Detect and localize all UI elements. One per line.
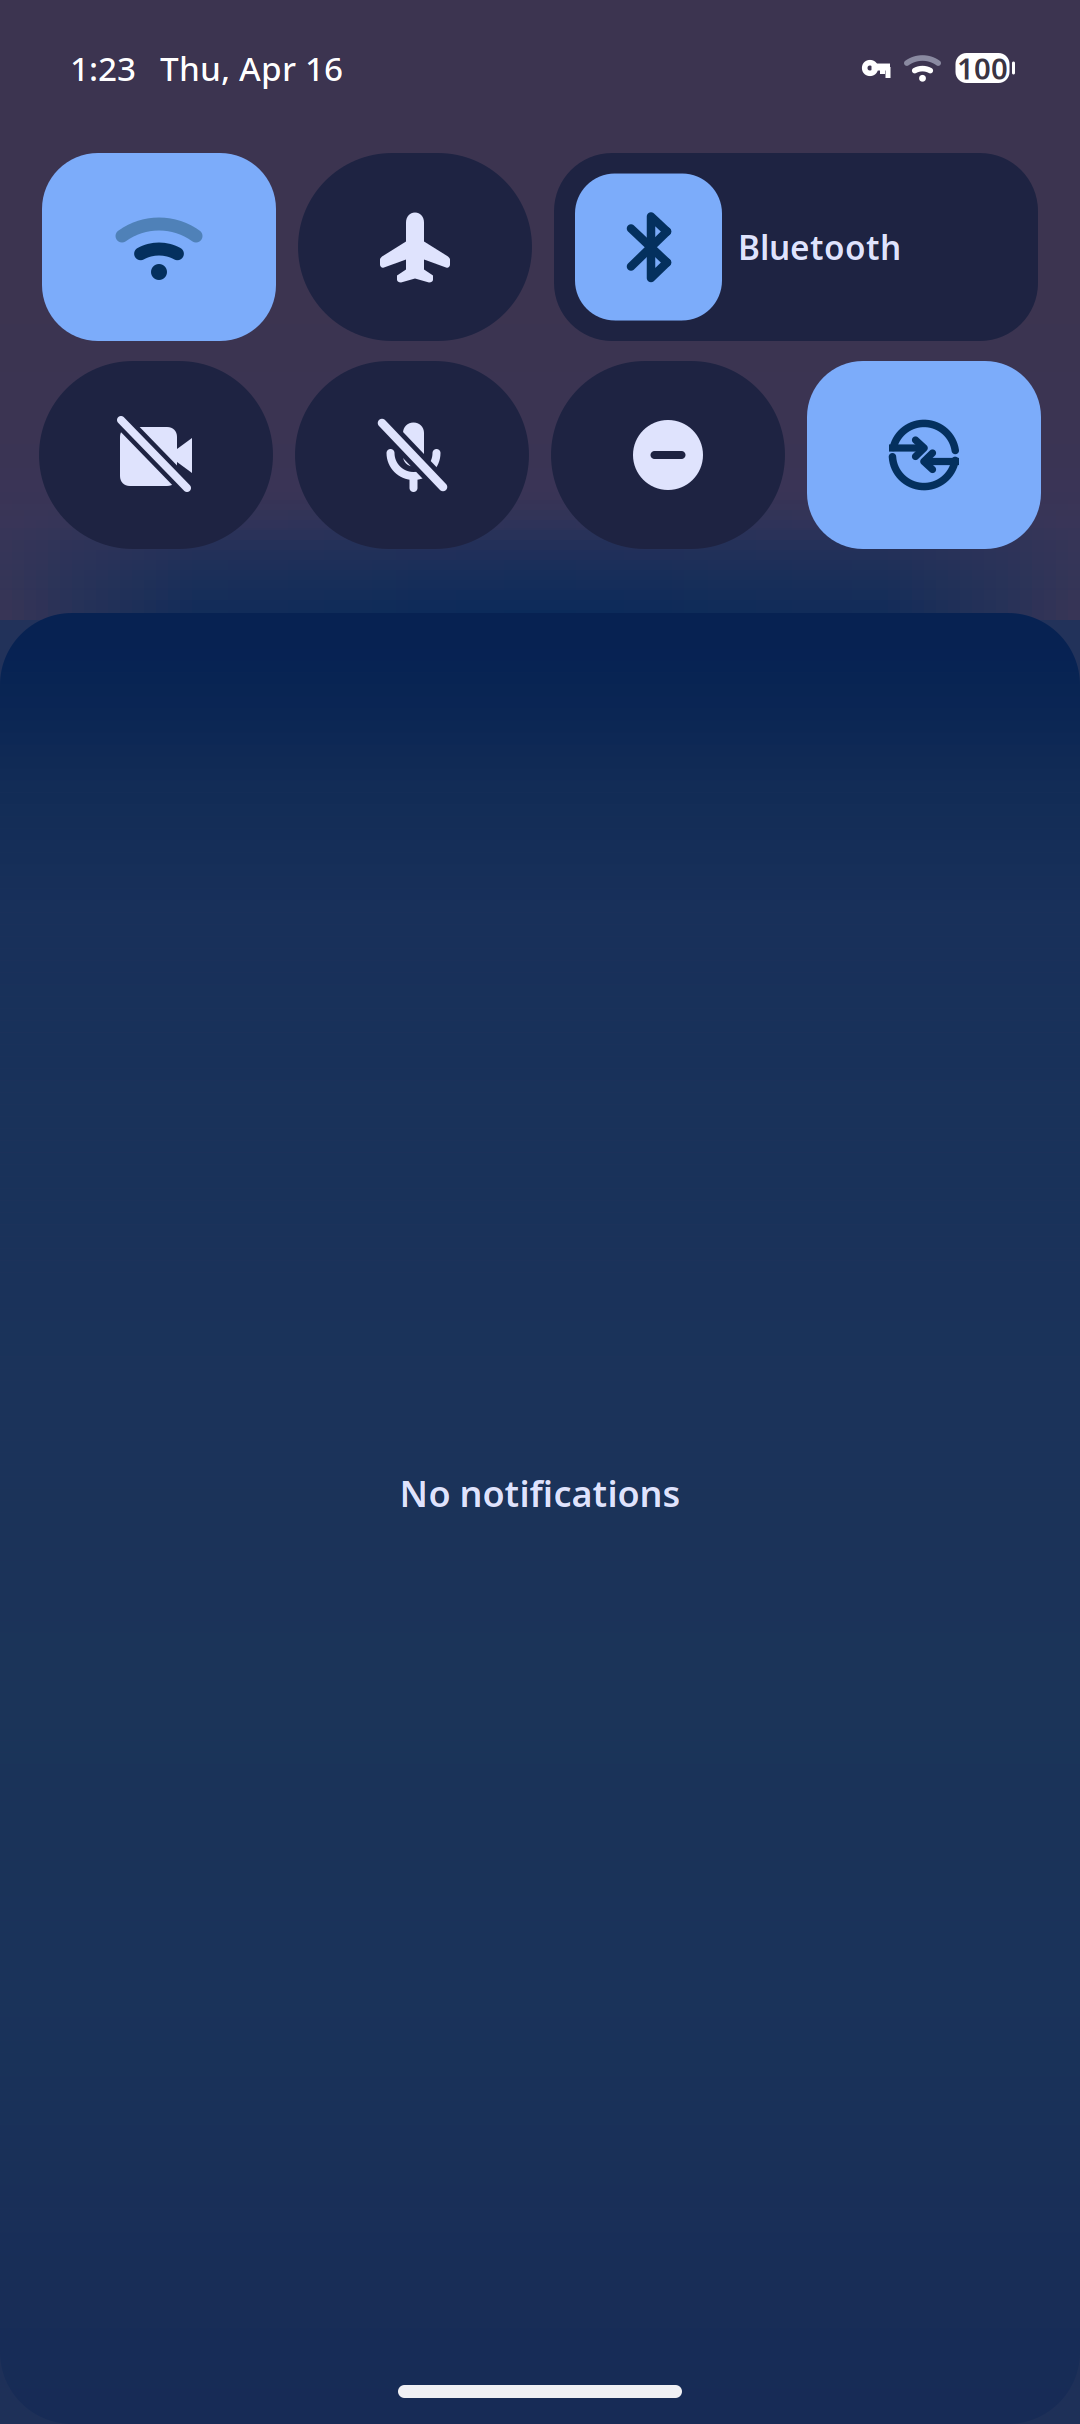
staticText: No notifications [399,1469,680,1517]
button[interactable]: Internet [42,153,276,341]
button[interactable]: Camera access [39,361,273,549]
button[interactable]: Mic access [295,361,529,549]
button[interactable]: Data Saver [807,361,1041,549]
button[interactable]: Bluetooth [554,153,1038,341]
staticText: Bluetooth [738,225,901,269]
staticText: Thu, Apr 16 [160,46,343,90]
button[interactable]: Airplane mode [298,153,532,341]
staticText: 100 [957,48,1008,87]
button[interactable]: Do Not Disturb [551,361,785,549]
staticText: 1:23 [70,46,136,90]
